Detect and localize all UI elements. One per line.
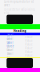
staticText: Value [25,35,33,39]
staticText: Value [25,43,33,46]
button[interactable] [6,58,33,68]
staticText: Value [25,50,33,54]
staticText: Lorem ipsum dolor sit amet [4,0,34,7]
staticText: Label three [6,41,14,48]
staticText: Heading [13,29,26,33]
staticText: Label one [6,33,13,41]
staticText: consectetur adipiscing elit [4,8,35,15]
staticText: Value [25,46,33,50]
staticText: Label six [6,52,13,59]
staticText: Value [25,54,33,57]
staticText: Value [25,39,33,42]
staticText: Label two [6,37,13,44]
staticText: Label five [6,48,13,55]
staticText: Label four [6,45,13,52]
